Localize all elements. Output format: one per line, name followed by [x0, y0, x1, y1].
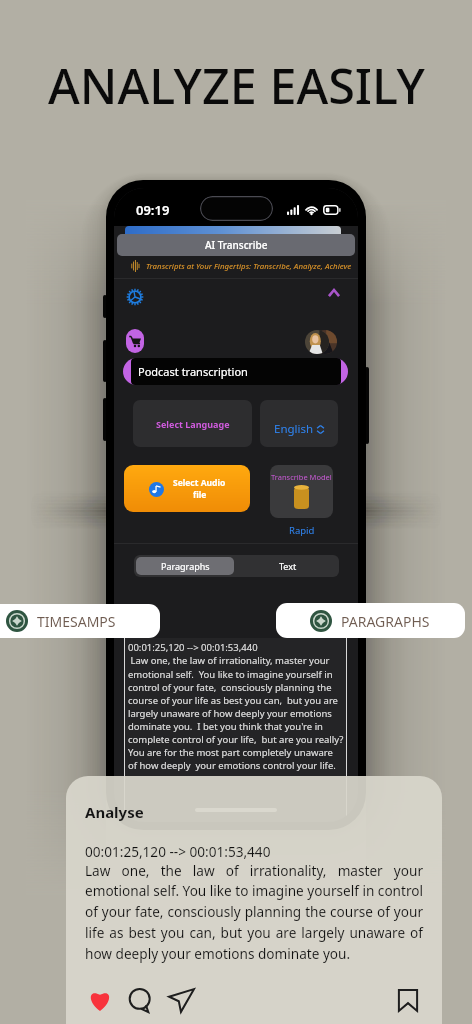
button[interactable]: Text [236, 555, 339, 577]
staticText: Rapid [289, 524, 315, 537]
button[interactable]: Podcast transcription [131, 358, 341, 385]
button[interactable]: Like [87, 987, 113, 1013]
button[interactable]: Settings [126, 288, 144, 306]
button[interactable]: Cart [126, 329, 144, 353]
staticText: 09:19 [136, 201, 170, 219]
staticText: Law one, the law of irrationality, maste… [85, 861, 423, 963]
staticText: English [274, 421, 314, 437]
staticText: 00:01:25,120 --> 00:01:53,440 [128, 641, 258, 654]
button[interactable]: Collapse [323, 284, 345, 306]
staticText: 00:01:25,120 --> 00:01:53,440 [85, 842, 271, 861]
button[interactable]: English [260, 400, 338, 447]
button[interactable]: PARAGRAPHS [276, 603, 465, 638]
staticText: Transcripts at Your Fingertips: Transcri… [146, 261, 352, 272]
button[interactable]: AI Transcribe [117, 234, 355, 256]
staticText: Select Audio [173, 477, 226, 489]
staticText: AI Transcribe [205, 238, 268, 252]
button[interactable]: Select Language [133, 400, 252, 447]
staticText: Podcast transcription [138, 364, 248, 379]
staticText: Text [279, 560, 297, 572]
staticText: PARAGRAPHS [341, 612, 430, 631]
button[interactable]: TIMESAMPS [0, 604, 160, 638]
staticText: Paragraphs [161, 560, 210, 572]
button[interactable]: Share [168, 987, 195, 1014]
staticText: TIMESAMPS [37, 612, 116, 631]
button[interactable]: Paragraphs [136, 557, 234, 575]
staticText: Transcribe Model [271, 472, 332, 482]
button[interactable]: Transcribe Model [270, 465, 333, 518]
staticText: Analyse [85, 802, 144, 822]
staticText: Select Language [156, 418, 230, 430]
staticText: Law one, the law of irrationality, maste… [128, 654, 344, 771]
button[interactable]: Comment [127, 987, 154, 1014]
staticText: file [193, 489, 207, 501]
button[interactable]: Select Audio [124, 465, 250, 512]
button[interactable]: Profiles [305, 330, 337, 354]
staticText: ANALYZE EASILY [48, 52, 425, 116]
button[interactable]: Save [395, 987, 421, 1013]
